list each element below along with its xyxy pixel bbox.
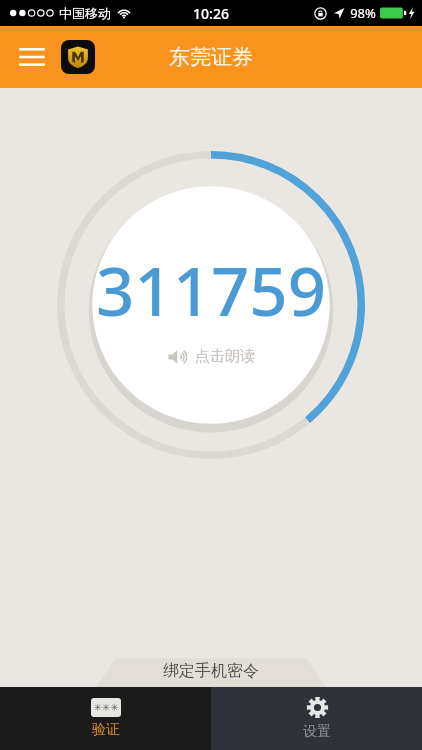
staticText: 验证: [92, 721, 120, 739]
staticText: ✳✳✳: [93, 702, 119, 714]
staticText: 绑定手机密令: [163, 661, 259, 681]
staticText: 点击朗读: [195, 347, 255, 366]
staticText: 311759: [96, 244, 326, 335]
staticText: 东莞证券: [169, 44, 253, 70]
button[interactable]: 绑定手机密令: [0, 655, 422, 687]
staticText: 中国移动: [59, 5, 111, 21]
staticText: 设置: [303, 723, 331, 741]
staticText: 10:26: [193, 4, 229, 23]
button[interactable]: Read token aloud: [56, 150, 366, 460]
staticText: 98%: [350, 4, 376, 22]
button[interactable]: 设置: [211, 687, 422, 750]
button[interactable]: ✳✳✳: [0, 687, 211, 750]
button[interactable]: Menu: [14, 39, 50, 75]
button[interactable]: App logo: [60, 39, 96, 75]
